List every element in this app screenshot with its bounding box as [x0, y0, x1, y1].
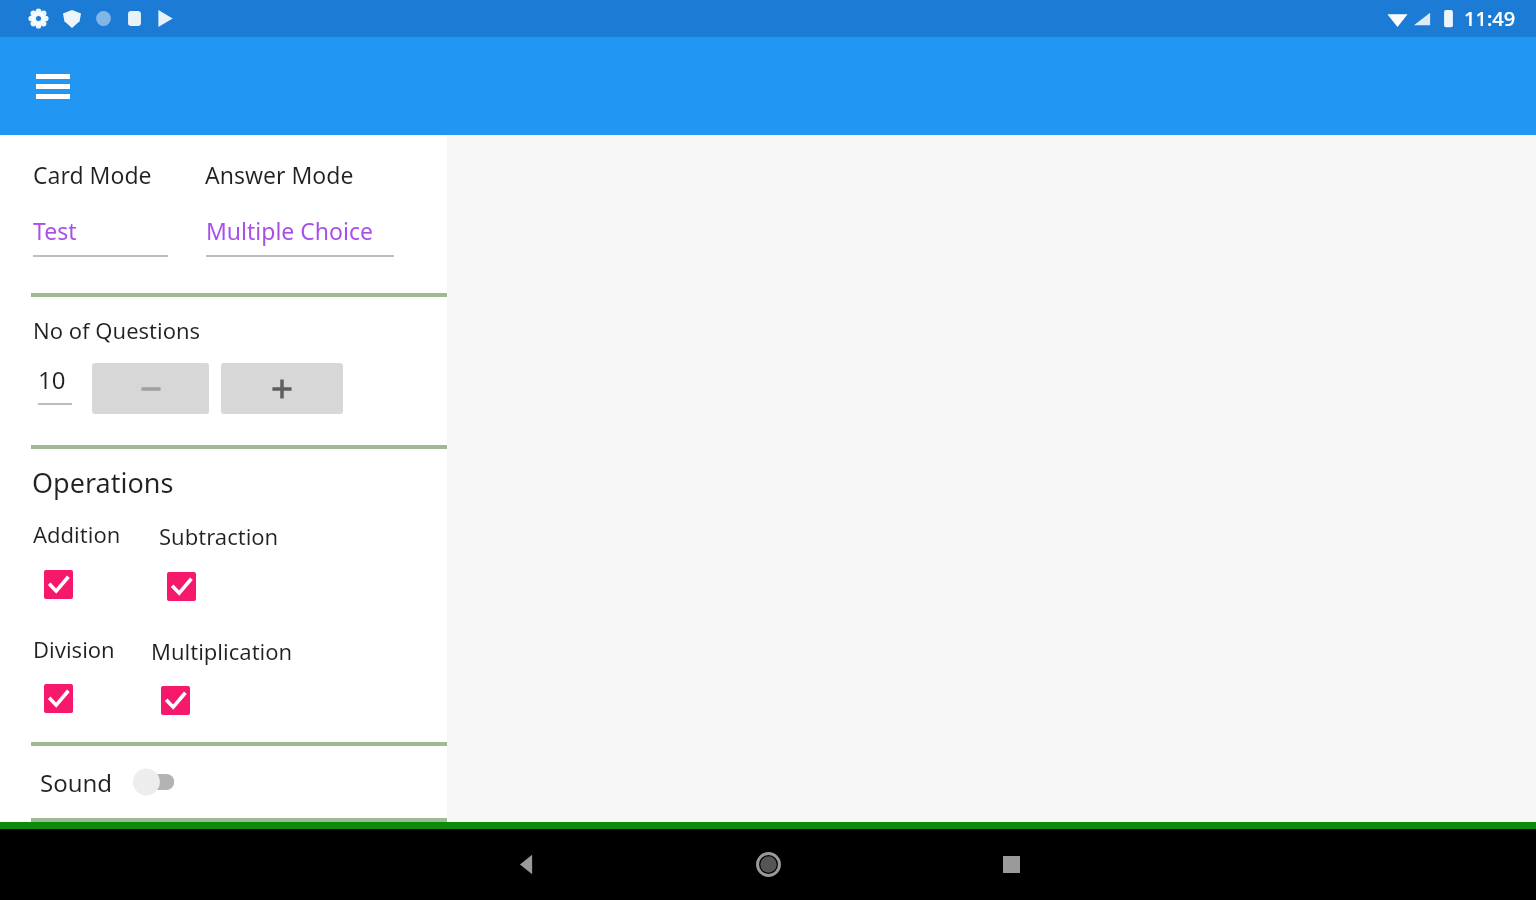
staticText: Operations: [32, 464, 174, 501]
button[interactable]: Multiple Choice: [206, 213, 394, 257]
staticText: Answer Mode: [205, 159, 354, 190]
button[interactable]: Increase: [221, 363, 343, 414]
button[interactable]: Subtraction: [158, 563, 204, 609]
staticText: Division: [33, 634, 115, 664]
staticText: Sound: [40, 766, 113, 799]
staticText: No of Questions: [33, 315, 201, 345]
button[interactable]: Test: [33, 213, 168, 257]
button[interactable]: Recent apps: [981, 829, 1041, 900]
staticText: 10: [38, 363, 66, 396]
staticText: Multiplication: [151, 636, 293, 666]
button[interactable]: [129, 761, 187, 803]
button[interactable]: Division: [35, 675, 81, 721]
button[interactable]: Multiplication: [152, 677, 198, 723]
button[interactable]: Open navigation menu: [20, 53, 86, 119]
button[interactable]: Decrease: [92, 363, 209, 414]
button[interactable]: Back: [497, 829, 557, 900]
staticText: Test: [33, 215, 77, 246]
staticText: Card Mode: [33, 159, 152, 190]
staticText: Addition: [33, 519, 121, 549]
button[interactable]: Addition: [35, 561, 81, 607]
button[interactable]: Sound: [0, 746, 447, 818]
staticText: 11:49: [1464, 5, 1516, 32]
staticText: Subtraction: [159, 521, 279, 551]
button[interactable]: Home: [738, 829, 798, 900]
staticText: Multiple Choice: [206, 215, 373, 246]
